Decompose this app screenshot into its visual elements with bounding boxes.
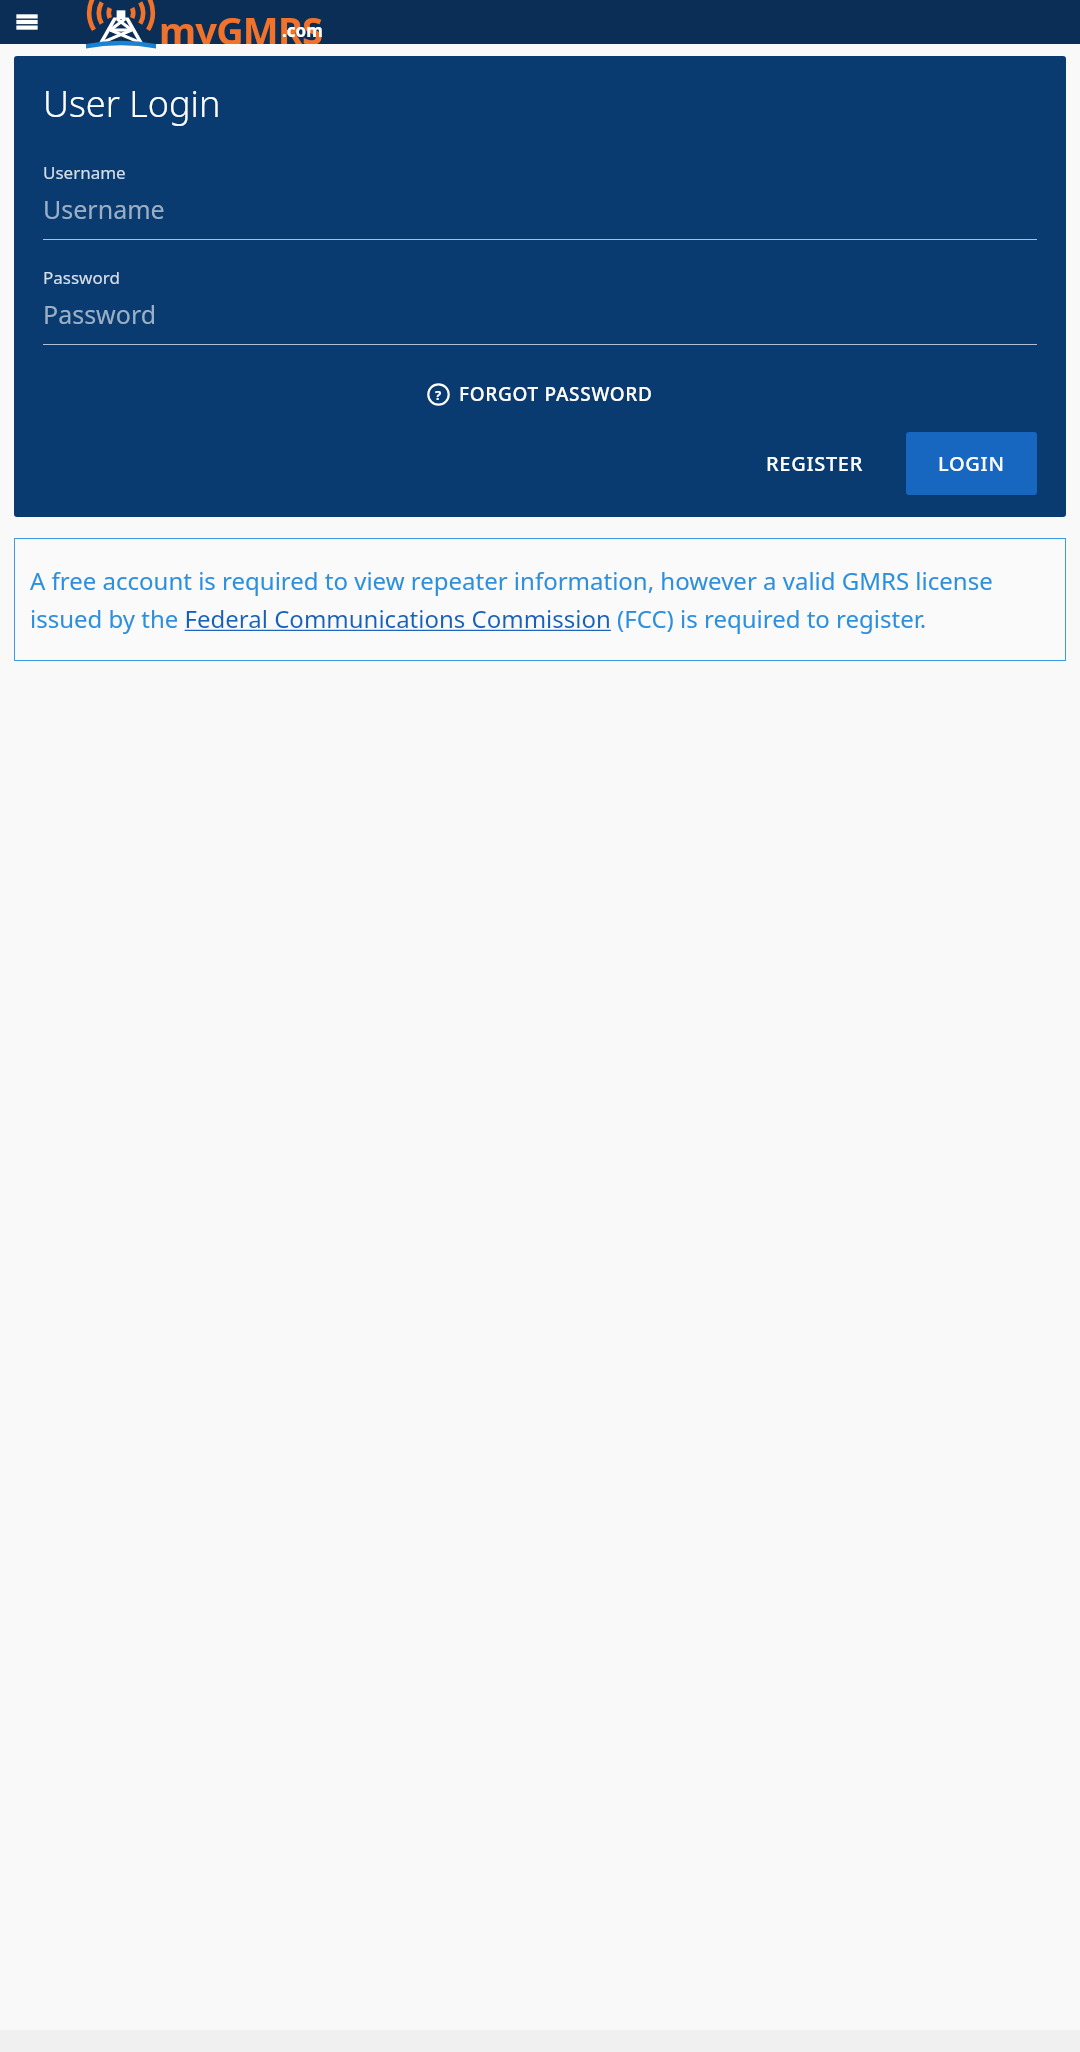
staticText: Password bbox=[43, 297, 157, 331]
staticText: REGISTER bbox=[766, 450, 864, 477]
button[interactable]: Open navigation menu bbox=[14, 9, 40, 35]
staticText: myGMRS bbox=[159, 4, 323, 44]
button[interactable]: Username bbox=[43, 161, 1037, 240]
staticText: A free account is required to view repea… bbox=[30, 564, 1050, 635]
button[interactable]: ? bbox=[417, 375, 663, 413]
staticText: LOGIN bbox=[938, 450, 1005, 477]
staticText: Password bbox=[43, 266, 120, 289]
button[interactable]: REGISTER bbox=[746, 435, 884, 492]
staticText: User Login bbox=[43, 79, 221, 128]
button[interactable]: Password bbox=[43, 266, 1037, 345]
staticText: Username bbox=[43, 161, 126, 184]
button[interactable]: LOGIN bbox=[906, 432, 1037, 495]
staticText: .com bbox=[282, 19, 323, 42]
staticText: FORGOT PASSWORD bbox=[459, 381, 653, 407]
staticText: ? bbox=[435, 386, 442, 404]
staticText: Username bbox=[43, 192, 165, 226]
